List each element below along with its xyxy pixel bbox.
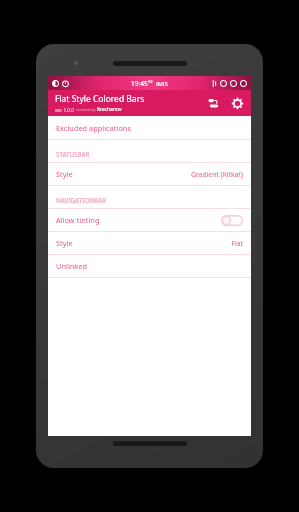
staticText: NAVIGATIONBAR <box>56 196 107 204</box>
button[interactable]: Excluded applications <box>48 117 251 140</box>
staticText: created by <box>76 107 97 112</box>
staticText: Flat <box>231 239 243 248</box>
staticText: Flat Style Colored Bars <box>55 93 145 105</box>
staticText: Gradient (Kitkat) <box>190 170 243 179</box>
staticText: Style <box>56 238 73 248</box>
button[interactable]: Colorize <box>205 95 221 111</box>
button[interactable]: Unlinked <box>48 255 251 278</box>
button[interactable]: Allow tinting <box>48 209 251 232</box>
staticText: IMIS <box>156 80 168 87</box>
staticText: Unlinked <box>56 261 88 271</box>
button[interactable]: Style <box>48 163 251 186</box>
staticText: 19:45 <box>131 79 148 88</box>
staticText: ibochanov <box>97 106 122 113</box>
button[interactable]: Settings <box>229 95 245 111</box>
button[interactable]: Style <box>48 232 251 255</box>
staticText: Excluded applications <box>56 123 131 133</box>
staticText: Allow tinting <box>56 215 100 225</box>
staticText: STATUSBAR <box>56 150 90 158</box>
staticText: ver. 1.0.0 <box>55 107 76 113</box>
staticText: 02 <box>148 79 153 84</box>
staticText: Style <box>56 169 73 179</box>
